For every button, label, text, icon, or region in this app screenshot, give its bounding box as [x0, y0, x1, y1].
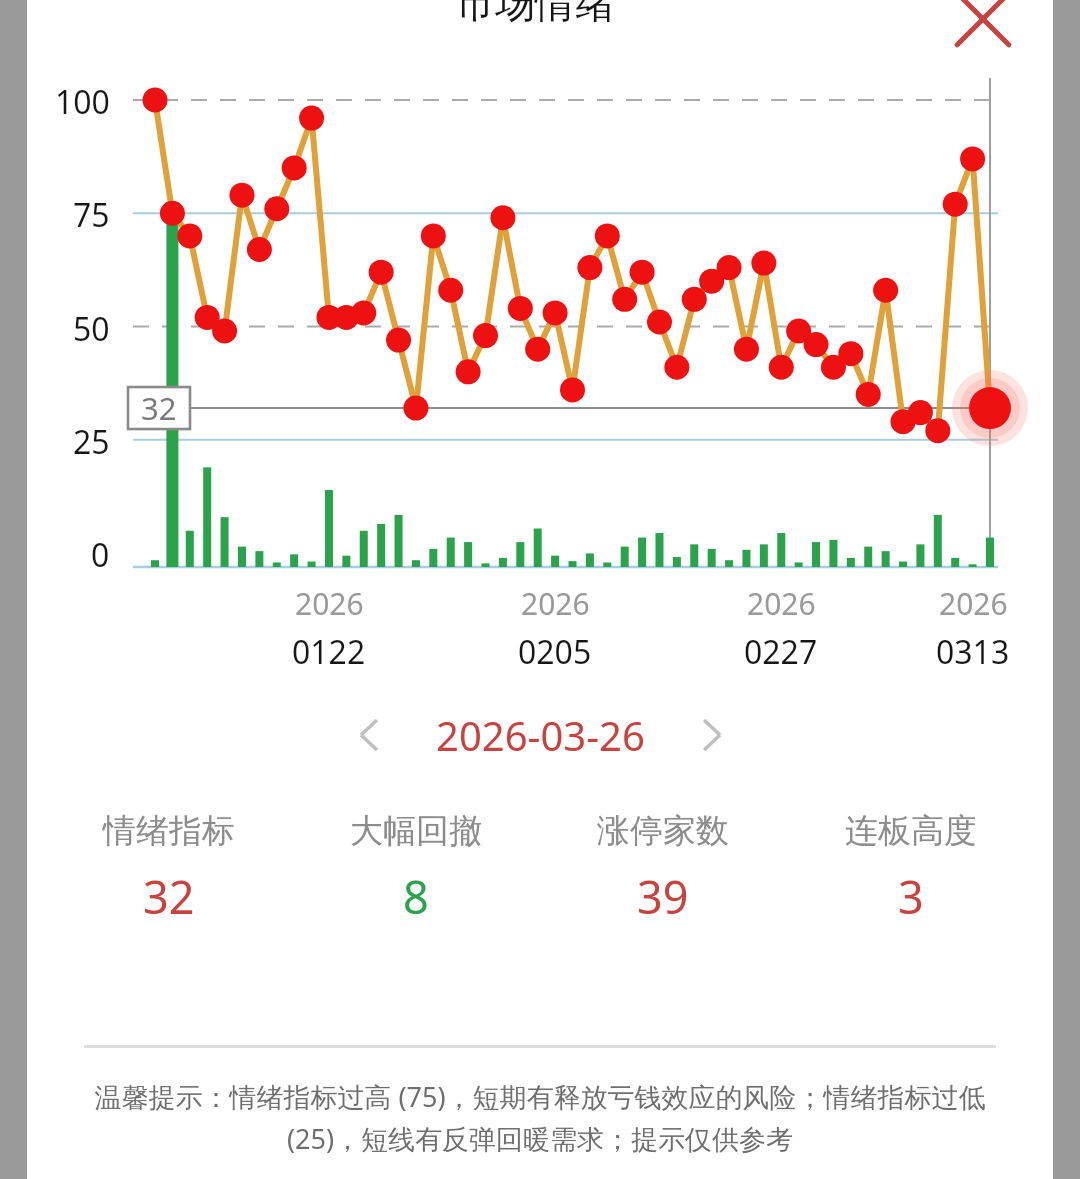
- staticText: 涨停家数: [597, 810, 729, 852]
- button[interactable]: Next day: [675, 700, 745, 770]
- staticText: 2026: [939, 583, 1008, 624]
- staticText: 2026: [521, 583, 590, 624]
- staticText: 2026: [747, 583, 816, 624]
- staticText: 2026: [295, 583, 364, 624]
- button[interactable]: 连板高度: [787, 810, 1035, 927]
- button[interactable]: 涨停家数: [539, 810, 787, 927]
- staticText: 75: [73, 193, 110, 233]
- staticText: 0313: [936, 630, 1010, 674]
- staticText: 大幅回撤: [350, 810, 482, 852]
- staticText: 8: [403, 866, 429, 927]
- button[interactable]: 情绪指标: [45, 810, 292, 927]
- staticText: 25: [73, 420, 110, 460]
- staticText: 39: [637, 866, 689, 927]
- staticText: 0: [91, 533, 110, 573]
- staticText: 3: [898, 866, 924, 927]
- staticText: 2026-03-26: [436, 708, 645, 762]
- staticText: 连板高度: [845, 810, 977, 852]
- staticText: 32: [143, 866, 195, 927]
- button[interactable]: 大幅回撤: [292, 810, 539, 927]
- staticText: 温馨提示：情绪指标过高 (75)，短期有释放亏钱效应的风险；情绪指标过低 (25…: [80, 1078, 1000, 1157]
- staticText: 情绪指标: [103, 810, 235, 852]
- staticText: 100: [55, 80, 110, 120]
- staticText: 0227: [744, 630, 818, 674]
- button[interactable]: Close: [940, 0, 1026, 62]
- staticText: 32: [141, 387, 177, 429]
- button[interactable]: Previous day: [336, 700, 406, 770]
- staticText: 市场情绪: [455, 0, 615, 28]
- button[interactable]: 2026-03-26: [436, 708, 645, 762]
- staticText: 0205: [518, 630, 592, 674]
- staticText: 50: [73, 307, 110, 347]
- staticText: 0122: [292, 630, 366, 674]
